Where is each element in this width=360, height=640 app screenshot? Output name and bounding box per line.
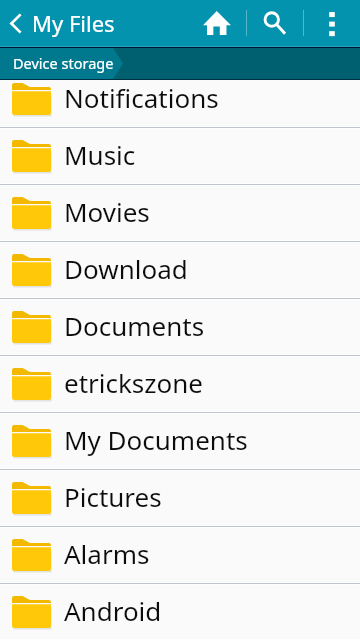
staticText: Device storage bbox=[13, 53, 114, 73]
button[interactable]: Movies bbox=[0, 185, 360, 240]
staticText: Download bbox=[64, 251, 188, 286]
button[interactable]: Search bbox=[247, 0, 303, 46]
button[interactable]: Download bbox=[0, 242, 360, 297]
staticText: etrickszone bbox=[64, 365, 203, 400]
button[interactable]: Pictures bbox=[0, 470, 360, 525]
button[interactable]: Notifications bbox=[0, 71, 360, 126]
button[interactable]: Documents bbox=[0, 299, 360, 354]
button[interactable]: Alarms bbox=[0, 527, 360, 582]
button[interactable]: Home bbox=[188, 0, 246, 46]
staticText: Pictures bbox=[64, 479, 162, 514]
button[interactable]: My Files bbox=[0, 0, 123, 46]
button[interactable]: Android bbox=[0, 584, 360, 639]
button[interactable]: Music bbox=[0, 128, 360, 183]
button[interactable]: More options bbox=[304, 0, 360, 46]
staticText: My Documents bbox=[64, 422, 248, 457]
staticText: My Files bbox=[32, 8, 115, 38]
staticText: Movies bbox=[64, 194, 150, 229]
staticText: Notifications bbox=[64, 80, 219, 115]
button[interactable]: My Documents bbox=[0, 413, 360, 468]
button[interactable]: etrickszone bbox=[0, 356, 360, 411]
staticText: Documents bbox=[64, 308, 205, 343]
staticText: Music bbox=[64, 137, 136, 172]
staticText: Alarms bbox=[64, 536, 150, 571]
staticText: Android bbox=[64, 593, 162, 628]
